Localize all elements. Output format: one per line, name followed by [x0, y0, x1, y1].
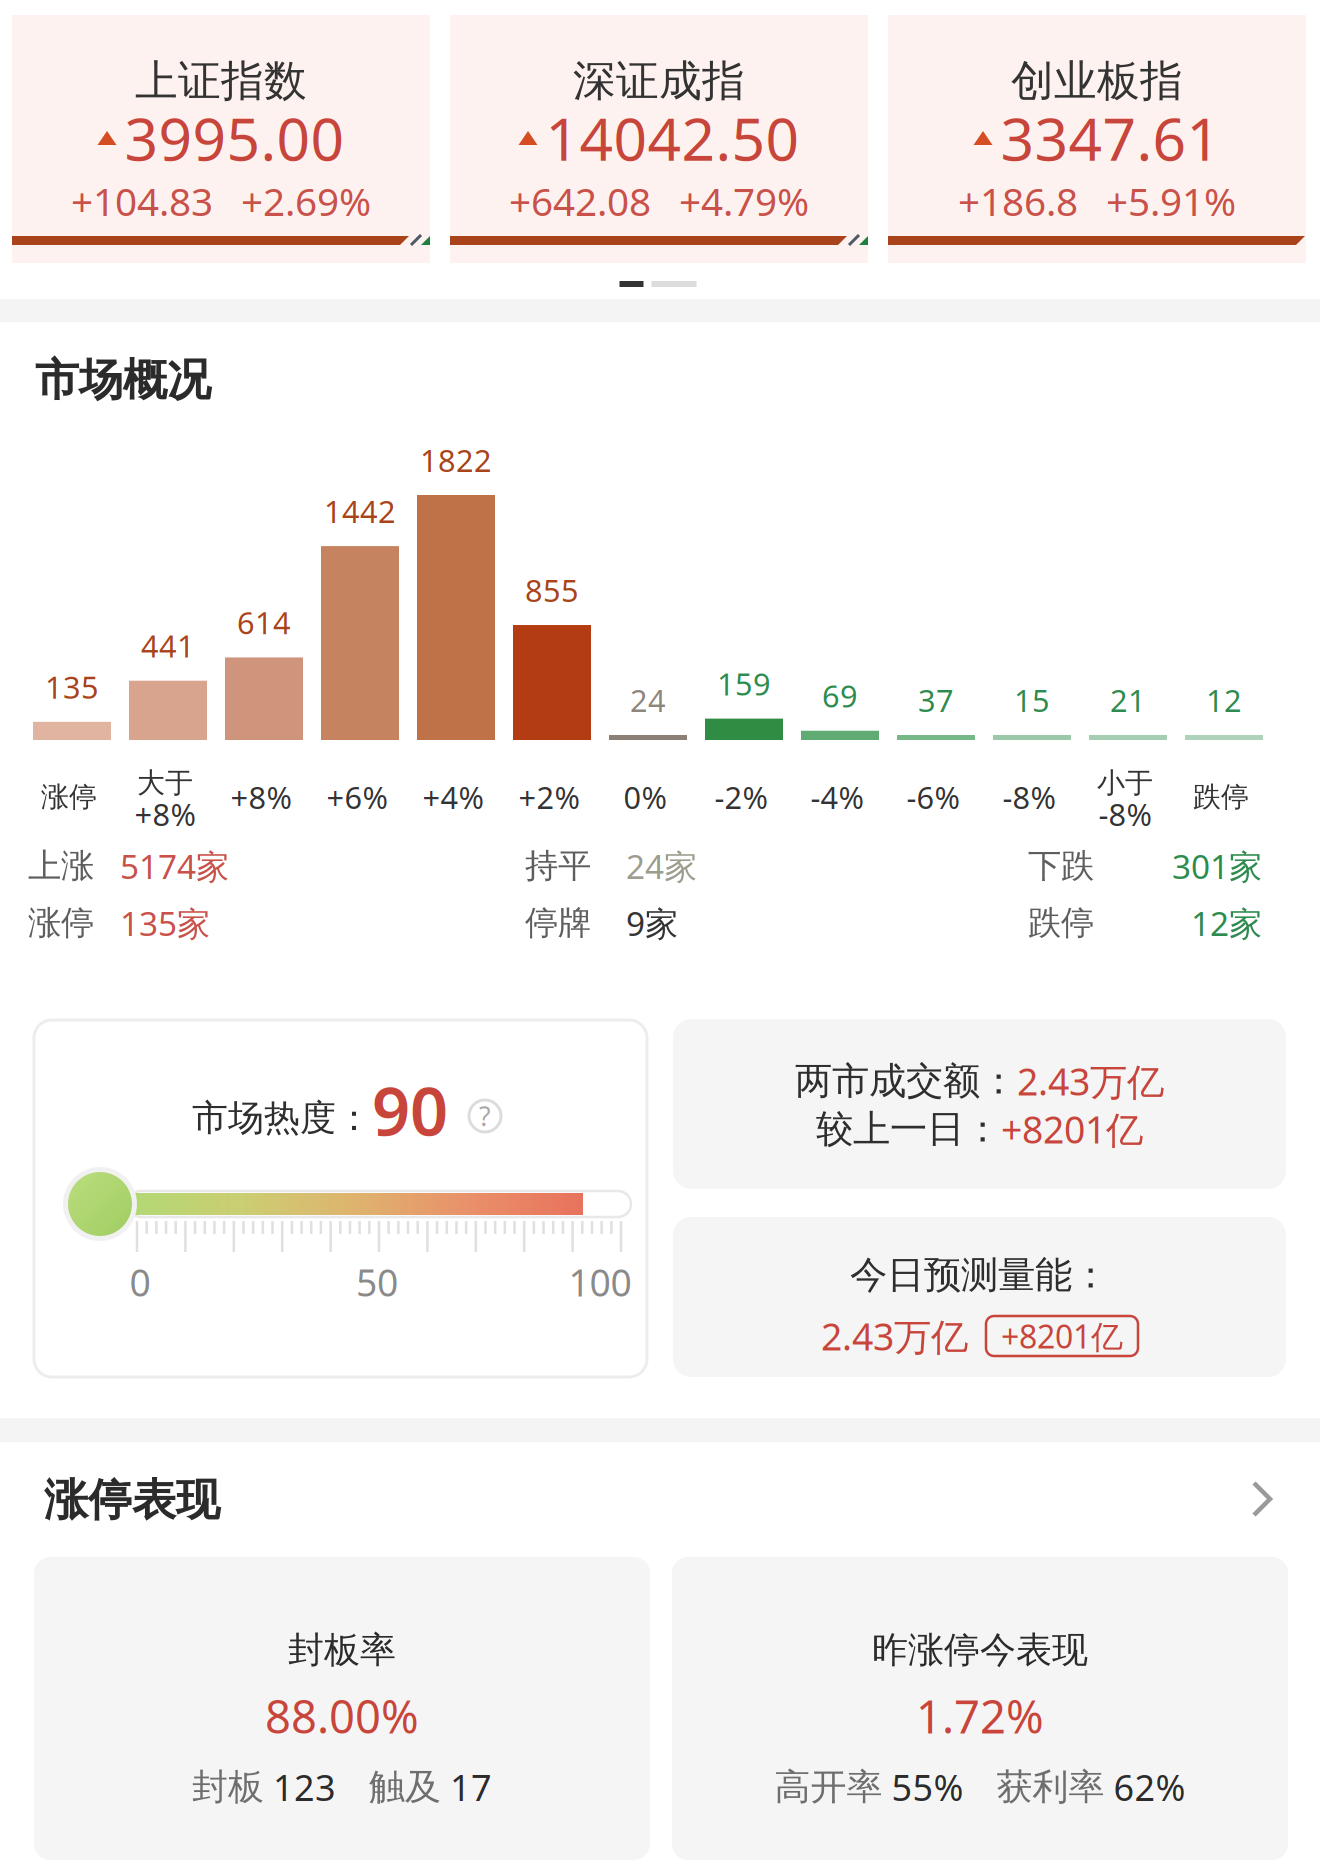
- staticText: 0: [129, 1257, 150, 1307]
- staticText: 441: [141, 625, 195, 666]
- staticText: 12家: [1191, 901, 1262, 945]
- staticText: +6%: [326, 777, 387, 817]
- staticText: 涨停: [28, 902, 94, 943]
- staticText: 50: [356, 1257, 398, 1307]
- staticText: 90: [372, 1066, 448, 1154]
- staticText: 9家: [626, 901, 678, 945]
- button[interactable]: 上证指数: [12, 15, 430, 263]
- staticText: 跌停: [1193, 780, 1249, 814]
- staticText: -6%: [906, 777, 959, 817]
- staticText: 下跌: [1028, 845, 1094, 886]
- staticText: 0%: [623, 777, 666, 817]
- staticText: +186.8: [958, 175, 1078, 227]
- staticText: 封板率: [288, 1628, 396, 1672]
- staticText: +8%: [230, 777, 291, 817]
- staticText: 上证指数: [135, 55, 307, 107]
- staticText: 24家: [626, 844, 697, 888]
- staticText: 159: [717, 663, 771, 704]
- staticText: 15: [1014, 680, 1050, 720]
- staticText: +2%: [518, 777, 579, 817]
- staticText: ?: [479, 1098, 491, 1134]
- button[interactable]: 涨停表现: [0, 1463, 1320, 1553]
- staticText: 触及: [336, 1765, 441, 1809]
- staticText: +4%: [422, 777, 483, 817]
- staticText: 大于: [137, 766, 193, 800]
- staticText: 两市成交额：: [795, 1058, 1017, 1104]
- staticText: 14042.50: [545, 99, 799, 177]
- staticText: 持平: [525, 845, 591, 886]
- staticText: 135家: [120, 901, 210, 945]
- staticText: 1.72%: [916, 1686, 1044, 1746]
- staticText: 3995.00: [124, 99, 344, 177]
- button[interactable]: 创业板指: [888, 15, 1306, 263]
- staticText: 创业板指: [1011, 55, 1183, 107]
- staticText: 封板: [192, 1765, 264, 1809]
- staticText: 614: [237, 602, 291, 643]
- staticText: 855: [525, 570, 579, 610]
- staticText: 深证成指: [573, 55, 745, 107]
- staticText: 3347.61: [1000, 99, 1220, 177]
- staticText: 1442: [324, 491, 396, 531]
- staticText: -8%: [1098, 794, 1151, 834]
- staticText: 涨停表现: [44, 1473, 220, 1527]
- staticText: 2.43万亿: [821, 1311, 968, 1361]
- staticText: 较上一日：: [816, 1106, 1001, 1152]
- staticText: 获利率: [963, 1765, 1104, 1809]
- staticText: 69: [822, 675, 858, 716]
- staticText: +8201亿: [1001, 1315, 1123, 1357]
- staticText: -8%: [1002, 777, 1055, 817]
- staticText: 37: [918, 680, 954, 720]
- staticText: 涨停: [41, 780, 97, 814]
- staticText: +642.08: [509, 175, 651, 227]
- staticText: -2%: [714, 777, 767, 817]
- staticText: 停牌: [525, 902, 591, 943]
- staticText: 高开率: [774, 1765, 882, 1809]
- button[interactable]: 深证成指: [450, 15, 868, 263]
- staticText: 62%: [1104, 1763, 1185, 1811]
- staticText: +5.91%: [1106, 175, 1236, 227]
- staticText: 123: [264, 1763, 336, 1811]
- staticText: 今日预测量能：: [850, 1252, 1109, 1298]
- staticText: 市场热度：: [192, 1096, 372, 1140]
- staticText: 上涨: [28, 845, 94, 886]
- staticText: 24: [630, 680, 666, 720]
- staticText: 12: [1206, 680, 1242, 720]
- staticText: +8201亿: [1001, 1104, 1143, 1154]
- button[interactable]: 封板率: [34, 1557, 650, 1860]
- staticText: 2.43万亿: [1017, 1056, 1164, 1106]
- staticText: 小于: [1097, 766, 1153, 800]
- staticText: 21: [1110, 680, 1146, 720]
- staticText: +4.79%: [679, 175, 809, 227]
- staticText: 301家: [1172, 844, 1262, 888]
- staticText: 5174家: [120, 844, 229, 888]
- staticText: 1822: [420, 440, 492, 480]
- staticText: +8%: [134, 794, 195, 834]
- staticText: +2.69%: [241, 175, 371, 227]
- staticText: 昨涨停今表现: [872, 1628, 1088, 1672]
- staticText: 55%: [882, 1763, 963, 1811]
- staticText: 88.00%: [265, 1686, 419, 1746]
- staticText: +104.83: [71, 175, 213, 227]
- staticText: 市场概况: [35, 353, 211, 407]
- staticText: 100: [568, 1257, 631, 1307]
- staticText: -4%: [810, 777, 863, 817]
- staticText: 17: [441, 1763, 492, 1811]
- staticText: 135: [45, 666, 99, 707]
- staticText: 跌停: [1028, 902, 1094, 943]
- button[interactable]: 昨涨停今表现: [672, 1557, 1288, 1860]
